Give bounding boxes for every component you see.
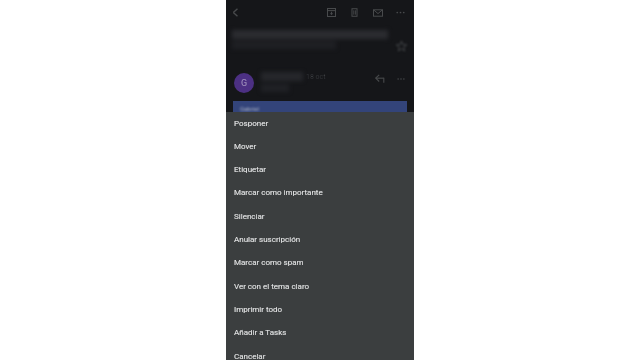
button[interactable]: Message options [393, 71, 409, 87]
staticText: Mover [234, 142, 257, 151]
staticText: Posponer [234, 119, 269, 128]
button[interactable]: Etiquetar [226, 158, 414, 181]
button[interactable]: Marcar como importante [226, 181, 414, 204]
button[interactable]: Mover [226, 135, 414, 158]
button[interactable]: Delete [345, 3, 364, 22]
button[interactable]: Back [226, 3, 245, 22]
staticText: Marcar como importante [234, 188, 323, 197]
button[interactable]: Silenciar [226, 205, 414, 228]
staticText: Añadir a Tasks [234, 328, 287, 337]
button[interactable]: Gabriel [233, 101, 407, 112]
staticText: Ver con el tema claro [234, 282, 310, 291]
staticText: Gabriel [240, 105, 259, 112]
staticText: Cancelar [234, 352, 266, 360]
button[interactable]: Cancelar [226, 345, 414, 360]
button[interactable]: Marcar como spam [226, 251, 414, 274]
staticText: Marcar como spam [234, 258, 304, 267]
staticText: Silenciar [234, 212, 265, 221]
button[interactable]: Archive [322, 3, 341, 22]
button[interactable]: Star [393, 38, 409, 54]
button[interactable]: More options [391, 3, 410, 22]
button[interactable]: Ver con el tema claro [226, 275, 414, 298]
button[interactable]: Posponer [226, 112, 414, 135]
button[interactable]: Reply [372, 71, 389, 88]
staticText: Anular suscripción [234, 235, 301, 244]
button[interactable]: Añadir a Tasks [226, 321, 414, 344]
staticText: Imprimir todo [234, 305, 283, 314]
staticText: 18 oct [306, 73, 326, 81]
staticText: G [241, 78, 248, 89]
button[interactable]: Mark as unread [368, 3, 387, 22]
button[interactable]: Imprimir todo [226, 298, 414, 321]
staticText: Etiquetar [234, 165, 266, 174]
button[interactable]: G [234, 73, 254, 93]
button[interactable]: Anular suscripción [226, 228, 414, 251]
